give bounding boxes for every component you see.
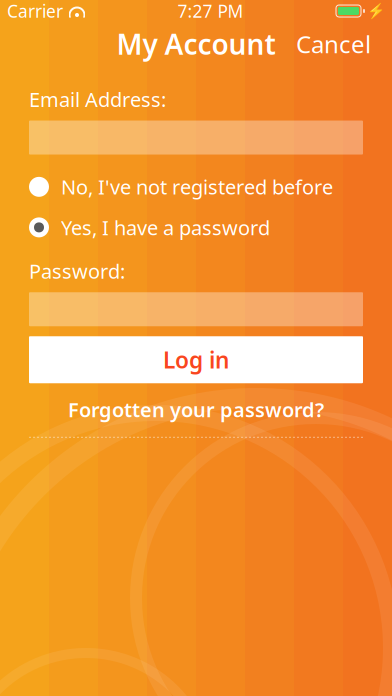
button[interactable]: Cancel (286, 22, 381, 66)
staticText: No, I've not registered before (61, 174, 333, 200)
button[interactable]: Log in (29, 336, 363, 383)
staticText: 7:27 PM (177, 0, 243, 22)
staticText: Forgotten your password? (68, 396, 324, 423)
staticText: Log in (163, 345, 229, 375)
staticText: Password: (29, 258, 125, 284)
staticText: Yes, I have a password (61, 214, 270, 241)
button[interactable]: Forgotten your password? (54, 389, 338, 430)
button[interactable]: Yes, I have a password (29, 209, 363, 246)
staticText: ⚡ (367, 3, 385, 19)
button[interactable]: No, I've not registered before (29, 169, 363, 205)
staticText: Cancel (296, 28, 371, 60)
staticText: Carrier (7, 0, 63, 22)
staticText: My Account (116, 25, 275, 63)
staticText: Email Address: (29, 86, 166, 113)
